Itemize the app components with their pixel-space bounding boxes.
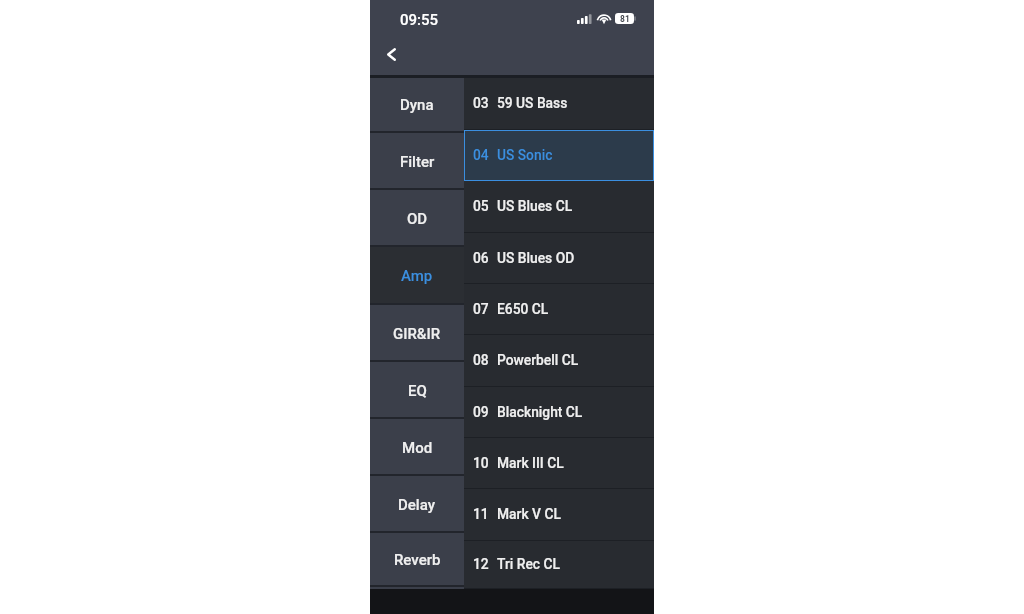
button[interactable]: EQ — [370, 362, 464, 419]
staticText: Blacknight CL — [497, 404, 583, 420]
staticText: Reverb — [394, 551, 441, 569]
staticText: 09:55 — [400, 11, 439, 29]
staticText: Mark III CL — [497, 455, 564, 471]
staticText: Tri Rec CL — [497, 556, 560, 572]
staticText: 04 — [473, 147, 489, 163]
staticText: OD — [407, 210, 428, 228]
staticText: Dyna — [400, 96, 434, 114]
staticText: Amp — [401, 267, 433, 285]
staticText: US Blues OD — [497, 250, 575, 266]
staticText: 10 — [473, 455, 489, 471]
staticText: 81 — [620, 14, 630, 24]
staticText: Filter — [400, 153, 435, 171]
staticText: 06 — [473, 250, 489, 266]
staticText: 11 — [473, 506, 489, 522]
button[interactable]: Amp — [370, 247, 464, 305]
staticText: 08 — [473, 352, 489, 368]
button[interactable]: Back — [374, 37, 409, 72]
staticText: EQ — [408, 382, 427, 400]
button[interactable]: GIR&IR — [370, 305, 464, 362]
button[interactable]: 03 — [464, 78, 654, 130]
button[interactable]: Dyna — [370, 78, 464, 133]
staticText: US Sonic — [497, 147, 553, 163]
button[interactable]: Delay — [370, 476, 464, 533]
button[interactable]: 07 — [464, 284, 654, 335]
staticText: E650 CL — [497, 301, 549, 317]
button[interactable]: 08 — [464, 335, 654, 387]
staticText: 03 — [473, 95, 489, 111]
staticText: 05 — [473, 198, 489, 214]
button[interactable]: Reverb — [370, 533, 464, 587]
staticText: 07 — [473, 301, 489, 317]
staticText: GIR&IR — [393, 325, 441, 343]
staticText: Powerbell CL — [497, 352, 579, 368]
button[interactable]: 12 — [464, 541, 654, 589]
staticText: US Blues CL — [497, 198, 573, 214]
staticText: 12 — [473, 556, 489, 572]
button[interactable]: 10 — [464, 438, 654, 489]
button[interactable]: 04 — [464, 130, 654, 181]
staticText: Mod — [402, 439, 433, 457]
button[interactable]: 11 — [464, 489, 654, 541]
button[interactable]: Filter — [370, 133, 464, 190]
button[interactable]: 06 — [464, 233, 654, 284]
button[interactable]: OD — [370, 190, 464, 247]
button[interactable]: 09 — [464, 387, 654, 438]
staticText: Mark V CL — [497, 506, 561, 522]
staticText: 09 — [473, 404, 489, 420]
button[interactable]: 05 — [464, 181, 654, 233]
staticText: 59 US Bass — [497, 95, 568, 111]
button[interactable]: Mod — [370, 419, 464, 476]
staticText: Delay — [398, 496, 436, 514]
